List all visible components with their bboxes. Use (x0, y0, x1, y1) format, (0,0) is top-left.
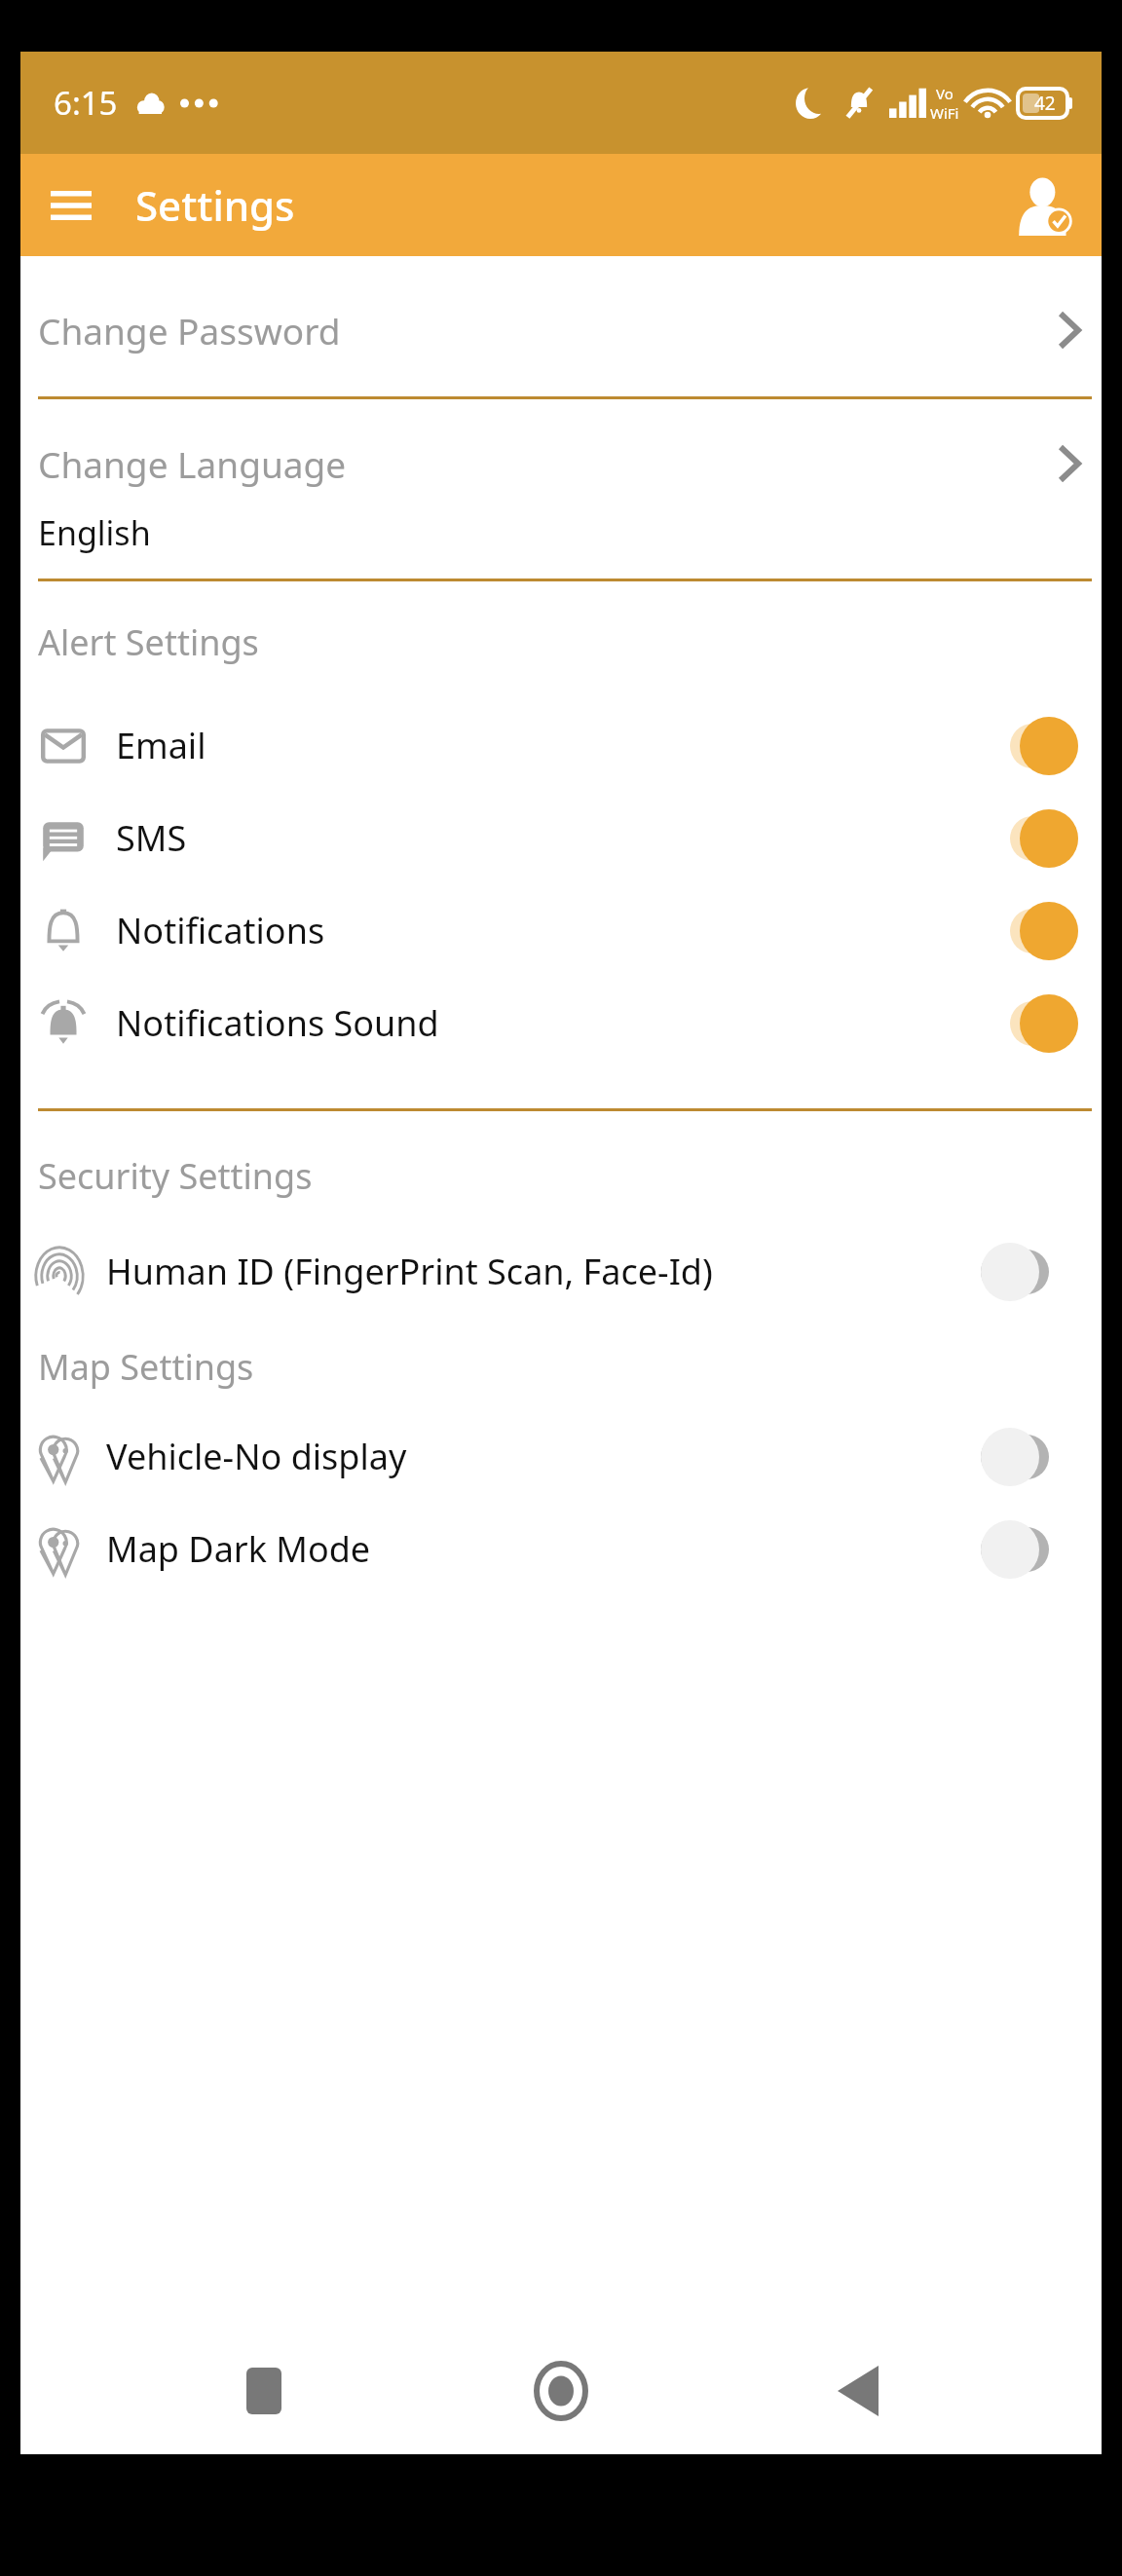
button[interactable]: Recent apps (210, 2337, 318, 2445)
button[interactable] (981, 994, 1078, 1053)
staticText: 6:15 (54, 81, 118, 125)
staticText: Change Language (38, 439, 1059, 488)
button[interactable]: Map Dark Mode (20, 1503, 1102, 1595)
button[interactable]: Change Language (20, 432, 1102, 495)
staticText: Email (116, 722, 981, 769)
staticText: Alert Settings (38, 618, 259, 666)
button[interactable] (981, 809, 1078, 868)
staticText: Map Settings (38, 1343, 254, 1391)
button[interactable]: Vehicle-No display (20, 1410, 1102, 1503)
staticText: Change Password (38, 306, 1059, 355)
button[interactable]: SMS (20, 792, 1102, 884)
button[interactable] (981, 1243, 1078, 1301)
staticText: WiFi (930, 103, 959, 123)
button[interactable]: Notifications Sound (20, 977, 1102, 1069)
staticText: English (38, 510, 151, 555)
button[interactable]: Human ID (FingerPrint Scan, Face-Id) (20, 1225, 1102, 1318)
staticText: Vehicle-No display (106, 1433, 981, 1480)
staticText: SMS (116, 814, 981, 862)
button[interactable] (981, 902, 1078, 960)
button[interactable] (981, 717, 1078, 775)
button[interactable]: Change Password (20, 299, 1102, 361)
staticText: 42 (1034, 91, 1056, 116)
staticText: Security Settings (38, 1152, 313, 1200)
staticText: Notifications Sound (116, 999, 981, 1047)
button[interactable]: Email (20, 699, 1102, 792)
staticText: Human ID (FingerPrint Scan, Face-Id) (106, 1248, 981, 1295)
button[interactable]: Back (804, 2337, 912, 2445)
staticText: Settings (135, 177, 295, 233)
staticText: Notifications (116, 907, 981, 954)
staticText: Map Dark Mode (106, 1525, 981, 1573)
staticText: Vo (936, 84, 954, 103)
button[interactable]: Open navigation menu (40, 174, 102, 237)
button[interactable]: Notifications (20, 884, 1102, 977)
button[interactable]: Profile (1006, 168, 1080, 243)
button[interactable]: Home (507, 2337, 615, 2445)
button[interactable] (981, 1428, 1078, 1486)
button[interactable] (981, 1520, 1078, 1579)
